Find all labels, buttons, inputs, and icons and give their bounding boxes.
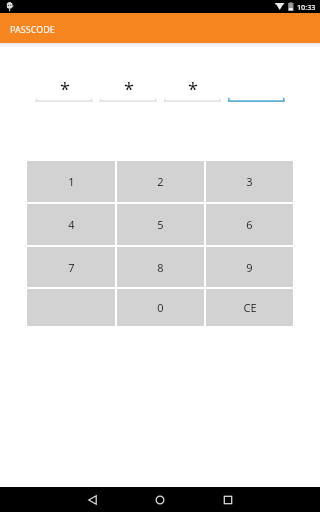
button[interactable]: 5 bbox=[117, 204, 204, 245]
button[interactable]: Back bbox=[61, 487, 123, 512]
button[interactable]: 8 bbox=[117, 247, 204, 287]
button[interactable]: * bbox=[36, 77, 93, 102]
button[interactable]: 1 bbox=[27, 161, 115, 202]
button[interactable]: 4 bbox=[27, 204, 115, 245]
staticText: 2 bbox=[157, 174, 164, 189]
button[interactable]: * bbox=[100, 77, 157, 102]
staticText: PASSCODE bbox=[10, 23, 55, 35]
button[interactable]: 6 bbox=[206, 204, 293, 245]
staticText: 9 bbox=[246, 260, 253, 275]
staticText: 1 bbox=[68, 174, 75, 189]
button[interactable]: Home bbox=[130, 487, 190, 512]
staticText: 3 bbox=[246, 174, 253, 189]
staticText: 7 bbox=[68, 260, 75, 275]
button[interactable]: CE bbox=[206, 289, 293, 326]
staticText: CE bbox=[243, 300, 257, 315]
staticText: 8 bbox=[157, 260, 164, 275]
staticText: * bbox=[124, 77, 134, 102]
staticText: * bbox=[188, 77, 198, 102]
button[interactable]: 9 bbox=[206, 247, 293, 287]
staticText: 5 bbox=[157, 217, 164, 232]
button[interactable]: 3 bbox=[206, 161, 293, 202]
button[interactable]: * bbox=[164, 77, 221, 102]
staticText: 0 bbox=[157, 300, 164, 315]
staticText: 10:33 bbox=[297, 2, 316, 12]
button[interactable] bbox=[228, 77, 285, 102]
staticText: 4 bbox=[68, 217, 75, 232]
button[interactable]: 2 bbox=[117, 161, 204, 202]
staticText: 6 bbox=[246, 217, 253, 232]
staticText: * bbox=[60, 77, 70, 102]
button[interactable]: PASSCODE bbox=[0, 13, 320, 43]
button[interactable]: 7 bbox=[27, 247, 115, 287]
button[interactable]: 0 bbox=[117, 289, 204, 326]
button[interactable]: Recents bbox=[198, 487, 258, 512]
